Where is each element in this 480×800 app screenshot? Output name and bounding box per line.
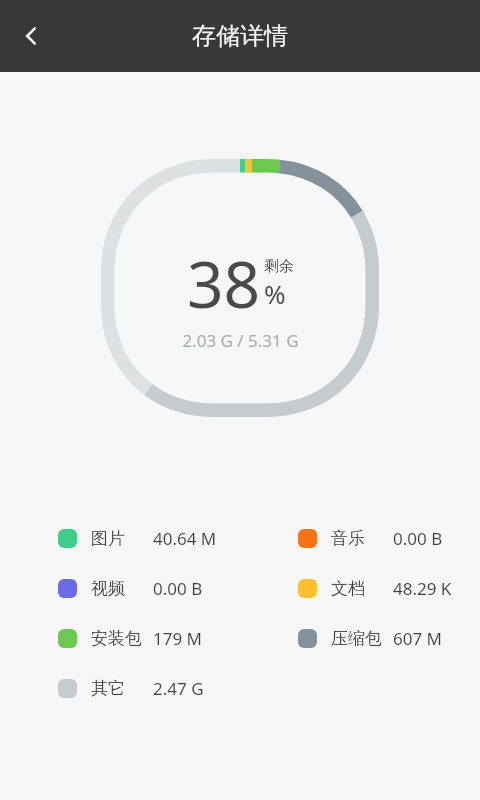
staticText: 40.64 M <box>153 527 217 550</box>
staticText: 剩余 <box>264 257 294 276</box>
button[interactable]: 其它 <box>0 663 240 713</box>
staticText: 607 M <box>393 627 443 650</box>
button[interactable]: 安装包 <box>0 613 240 663</box>
staticText: 图片 <box>91 528 125 549</box>
button[interactable]: 压缩包 <box>240 613 480 663</box>
staticText: % <box>264 276 286 311</box>
staticText: 48.29 K <box>393 577 452 600</box>
staticText: 2.03 G / 5.31 G <box>182 329 299 352</box>
staticText: 安装包 <box>91 628 142 649</box>
staticText: 压缩包 <box>331 628 382 649</box>
staticText: 2.47 G <box>153 677 204 700</box>
button[interactable]: 文档 <box>240 563 480 613</box>
button[interactable]: 图片 <box>0 513 240 563</box>
button[interactable]: Back <box>0 0 62 72</box>
staticText: 存储详情 <box>192 21 288 51</box>
staticText: 文档 <box>331 578 365 599</box>
staticText: 0.00 B <box>153 577 203 600</box>
staticText: 视频 <box>91 578 125 599</box>
staticText: 音乐 <box>331 528 365 549</box>
staticText: 0.00 B <box>393 527 443 550</box>
staticText: 179 M <box>153 627 203 650</box>
button[interactable]: 视频 <box>0 563 240 613</box>
staticText: 38 <box>187 240 261 327</box>
button[interactable]: 音乐 <box>240 513 480 563</box>
staticText: 其它 <box>91 678 125 699</box>
